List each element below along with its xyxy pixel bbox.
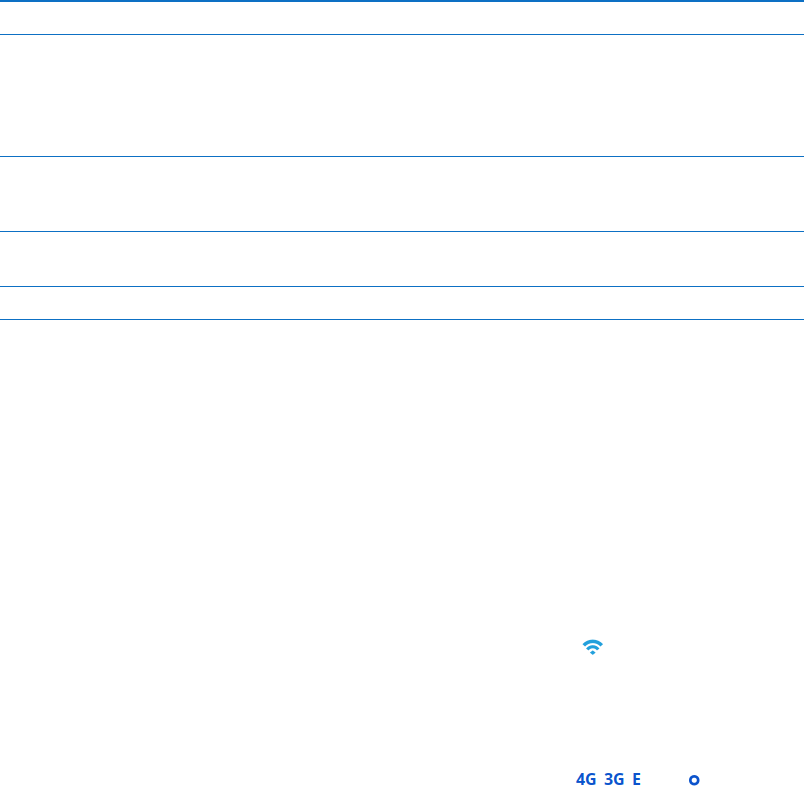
staticText: E <box>632 768 641 786</box>
button[interactable]: E <box>632 768 641 786</box>
button[interactable]: 3G <box>604 768 625 786</box>
staticText: 3G <box>604 768 625 786</box>
button[interactable]: Wi-Fi <box>582 639 603 656</box>
button[interactable]: Status <box>689 775 699 785</box>
staticText: 4G <box>576 768 597 786</box>
button[interactable]: 4G <box>576 768 597 786</box>
